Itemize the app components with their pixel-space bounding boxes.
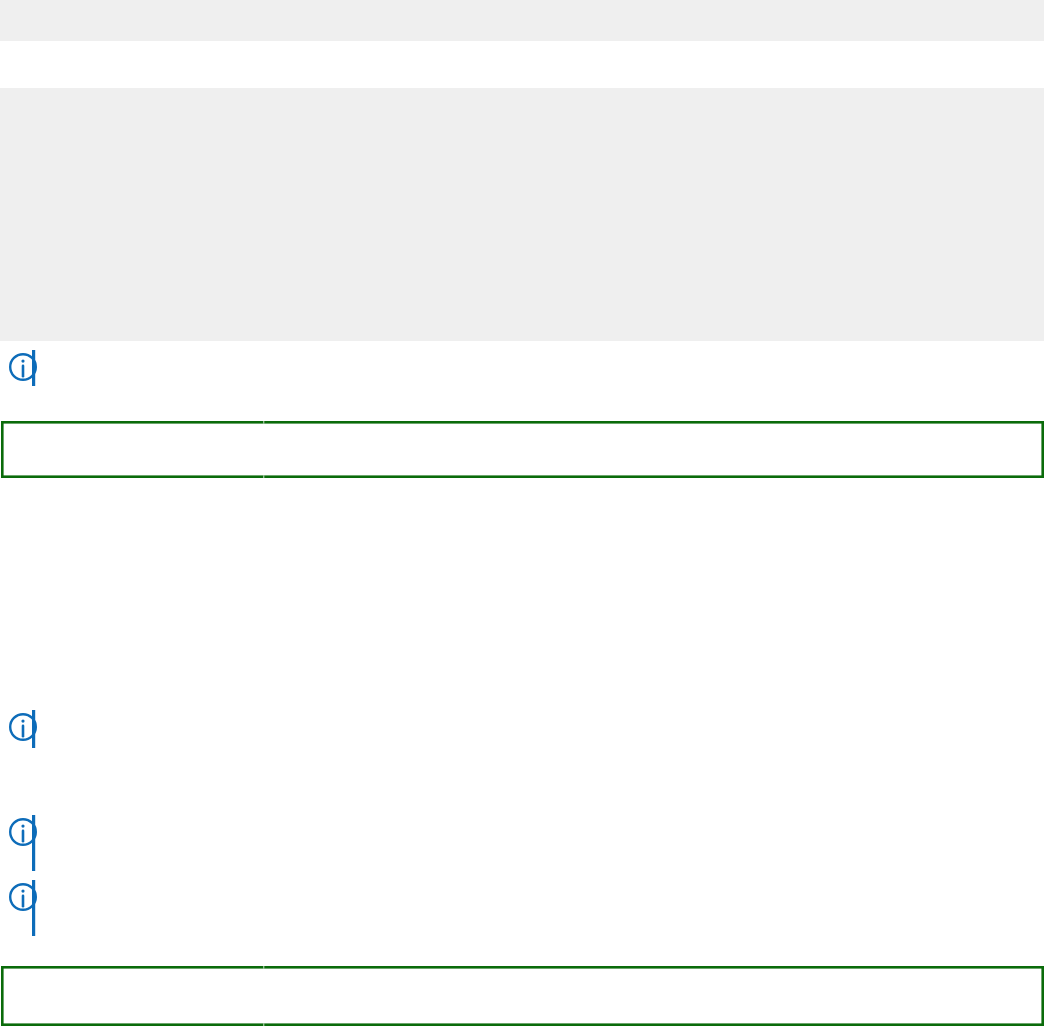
button[interactable]: Information note xyxy=(4,346,60,394)
button[interactable]: Information note xyxy=(4,877,60,941)
button[interactable]: Information note xyxy=(4,706,60,756)
button[interactable] xyxy=(1,966,1044,1026)
button[interactable]: Information note xyxy=(4,812,60,876)
button[interactable] xyxy=(1,421,1044,478)
